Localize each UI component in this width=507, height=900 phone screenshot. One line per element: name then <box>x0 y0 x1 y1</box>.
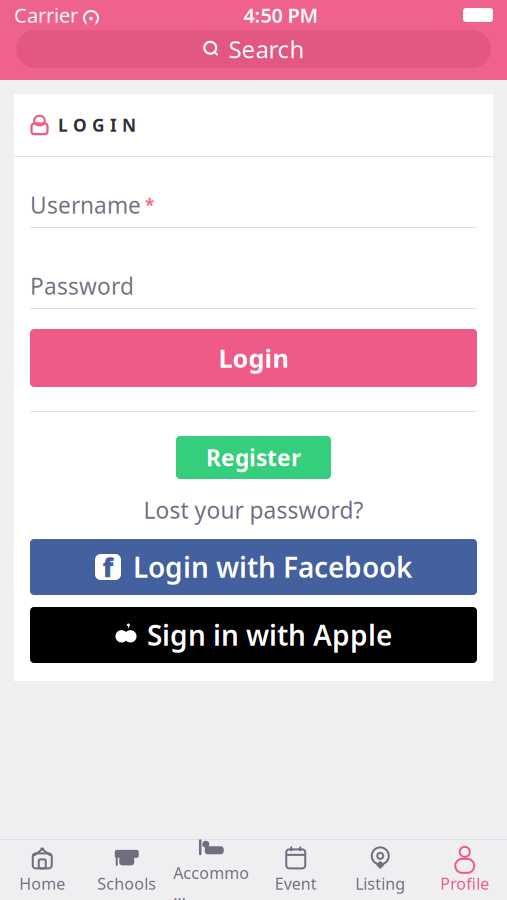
staticText: Password <box>30 271 134 301</box>
staticText: Home <box>19 873 65 894</box>
button[interactable]: Sign in with Apple <box>30 607 477 663</box>
button[interactable]: Lost your password? <box>143 495 363 525</box>
button[interactable]: Schools <box>84 844 169 896</box>
staticText: f <box>102 549 113 585</box>
staticText: Carrier <box>14 2 78 28</box>
staticText: Profile <box>440 873 489 894</box>
button[interactable]: Listing <box>338 844 422 896</box>
button[interactable]: Home <box>0 844 84 896</box>
staticText: Search <box>228 33 304 65</box>
button[interactable]: Profile <box>422 844 507 896</box>
button[interactable]: Login <box>30 329 477 387</box>
staticText: Event <box>275 873 317 894</box>
staticText: Username <box>30 190 141 220</box>
staticText: L O G I N <box>58 113 136 136</box>
staticText: Sign in with Apple <box>147 616 392 654</box>
staticText: Accommo… <box>173 862 249 900</box>
staticText: * <box>145 193 154 216</box>
staticText: 4:50 PM <box>243 2 318 28</box>
staticText: Login <box>218 341 288 375</box>
button[interactable]: f <box>30 539 477 595</box>
staticText: Login with Facebook <box>133 548 412 586</box>
button[interactable]: Accommo… <box>169 844 253 896</box>
button[interactable]: Register <box>176 436 331 479</box>
button[interactable]: Search <box>16 30 491 68</box>
button[interactable]: Event <box>253 844 338 896</box>
staticText: Register <box>206 442 301 472</box>
staticText: Listing <box>355 873 405 894</box>
staticText: Lost your password? <box>143 495 363 525</box>
staticText: Schools <box>97 873 156 894</box>
